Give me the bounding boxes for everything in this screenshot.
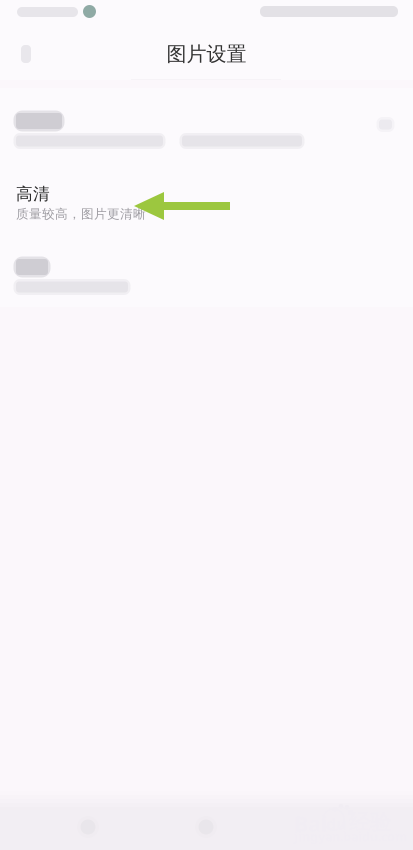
button[interactable]: 高清: [0, 161, 413, 234]
button[interactable]: Back: [0, 28, 52, 80]
button[interactable]: Quality option: [0, 234, 413, 307]
button[interactable]: Quality option: [0, 88, 413, 161]
staticText: 高清: [16, 183, 50, 204]
staticText: 图片设置: [166, 41, 246, 67]
staticText: 质量较高，图片更清晰: [16, 206, 146, 222]
